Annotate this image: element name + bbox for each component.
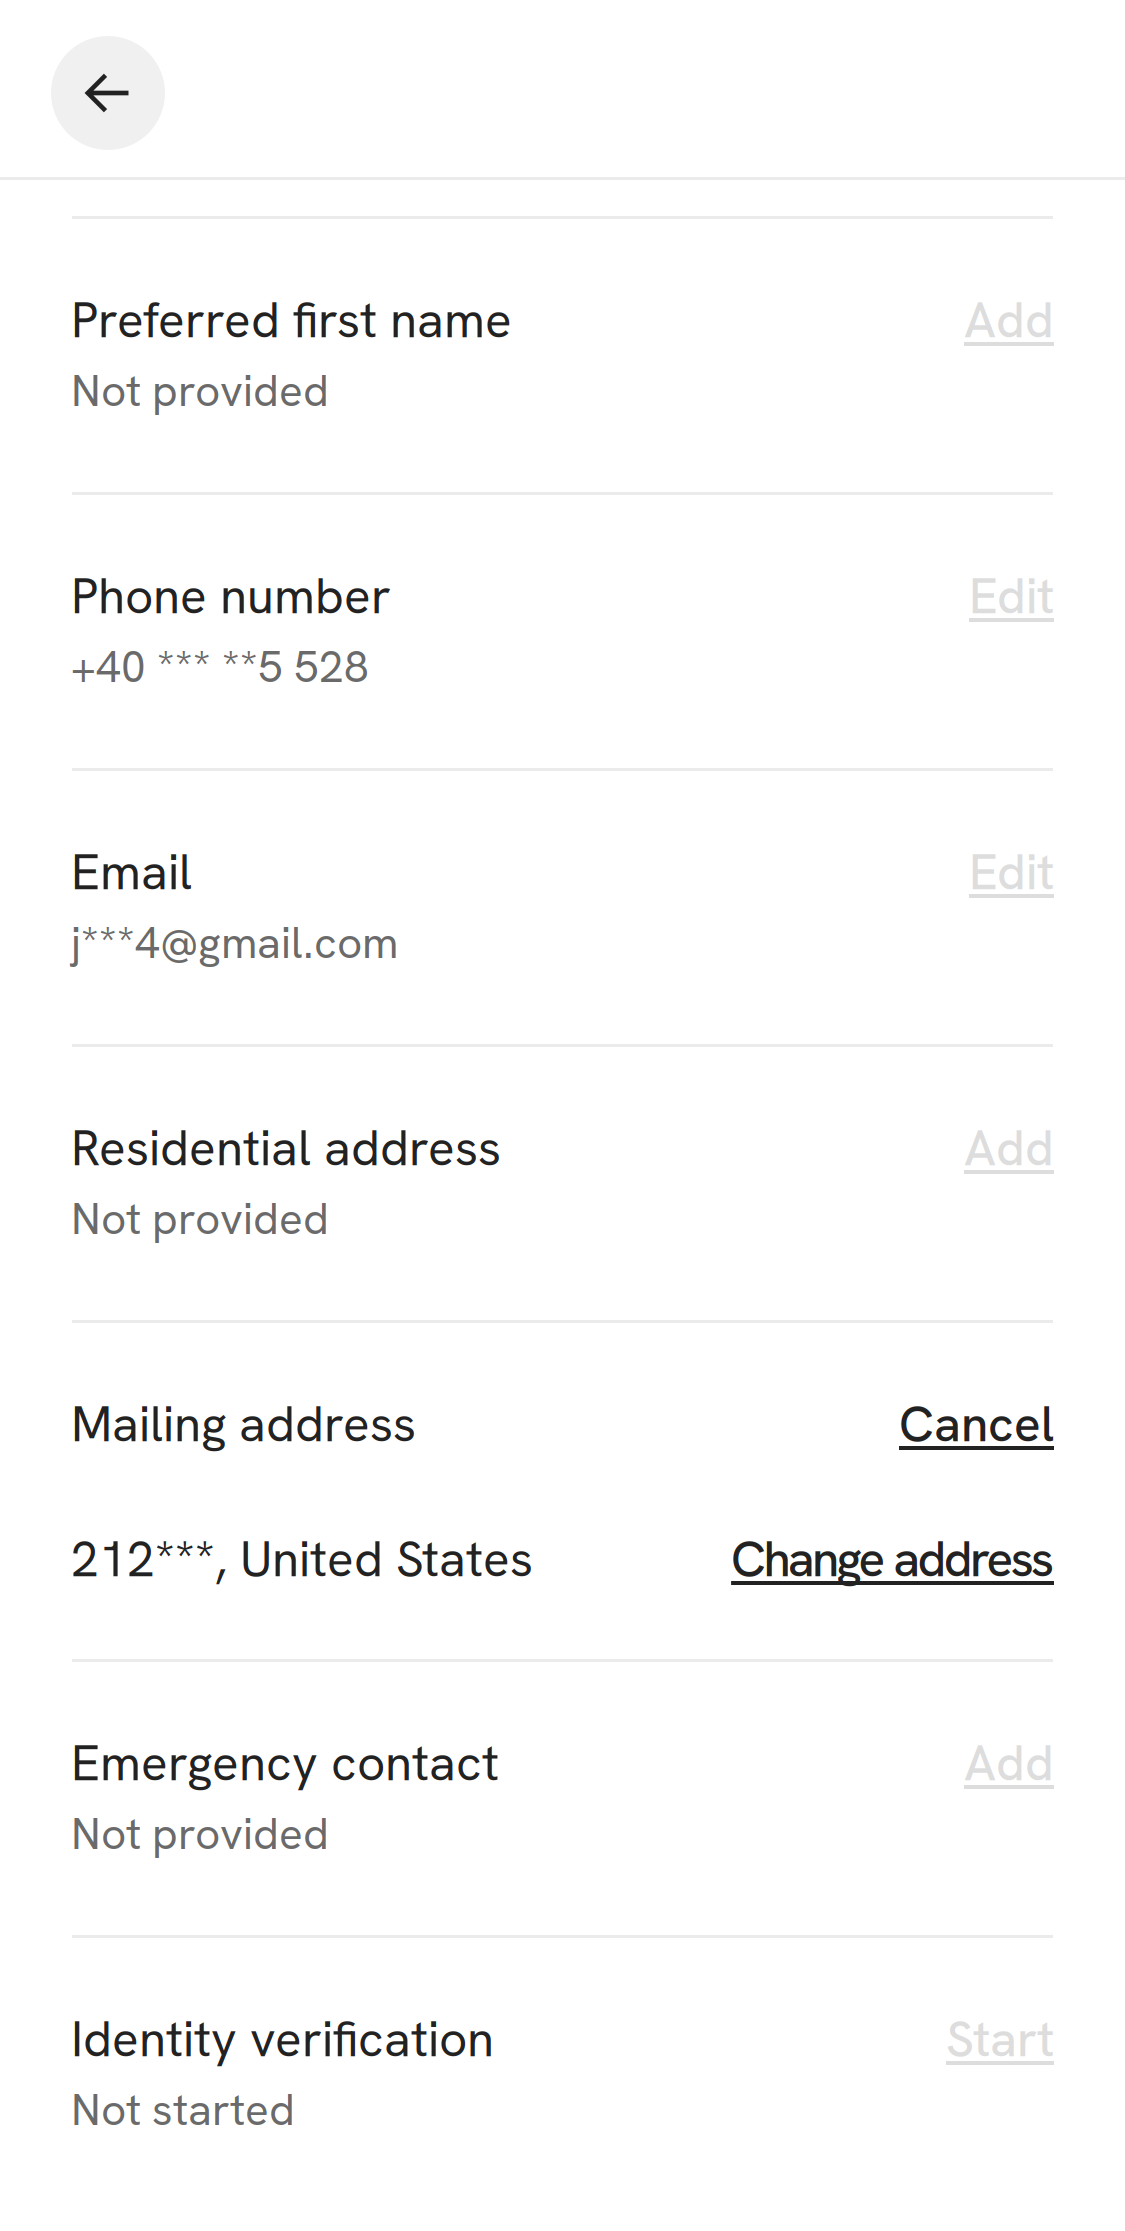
staticText: Cancel [899,1392,1054,1456]
staticText: Add [964,288,1054,352]
staticText: Identity verification [71,2007,494,2071]
staticText: Add [964,1116,1054,1180]
staticText: +40 *** **5 528 [71,638,369,695]
staticText: Mailing address [71,1392,416,1456]
staticText: j***4@gmail.com [71,914,398,971]
staticText: Phone number [71,564,391,628]
staticText: Not provided [71,362,329,419]
staticText: 212***, United States [71,1527,533,1591]
staticText: Emergency contact [71,1731,499,1795]
staticText: Not started [71,2081,295,2138]
button[interactable]: Edit [969,564,1054,628]
staticText: Edit [969,564,1054,628]
staticText: Add [964,1731,1054,1795]
button[interactable]: Add [964,1116,1054,1180]
staticText: Start [946,2007,1054,2071]
staticText: Not provided [71,1190,329,1247]
button[interactable]: Add [964,1731,1054,1795]
staticText: Edit [969,840,1054,904]
staticText: Not provided [71,1805,329,1862]
button[interactable]: Start [946,2007,1054,2071]
staticText: Email [71,840,192,904]
button[interactable]: Back [51,36,165,150]
staticText: Residential address [71,1116,501,1180]
button[interactable]: Cancel [899,1392,1054,1456]
button[interactable]: Add [964,288,1054,352]
staticText: Change address [731,1527,1054,1591]
staticText: Preferred first name [71,288,512,352]
button[interactable]: Change address [731,1527,1054,1591]
button[interactable]: Edit [969,840,1054,904]
